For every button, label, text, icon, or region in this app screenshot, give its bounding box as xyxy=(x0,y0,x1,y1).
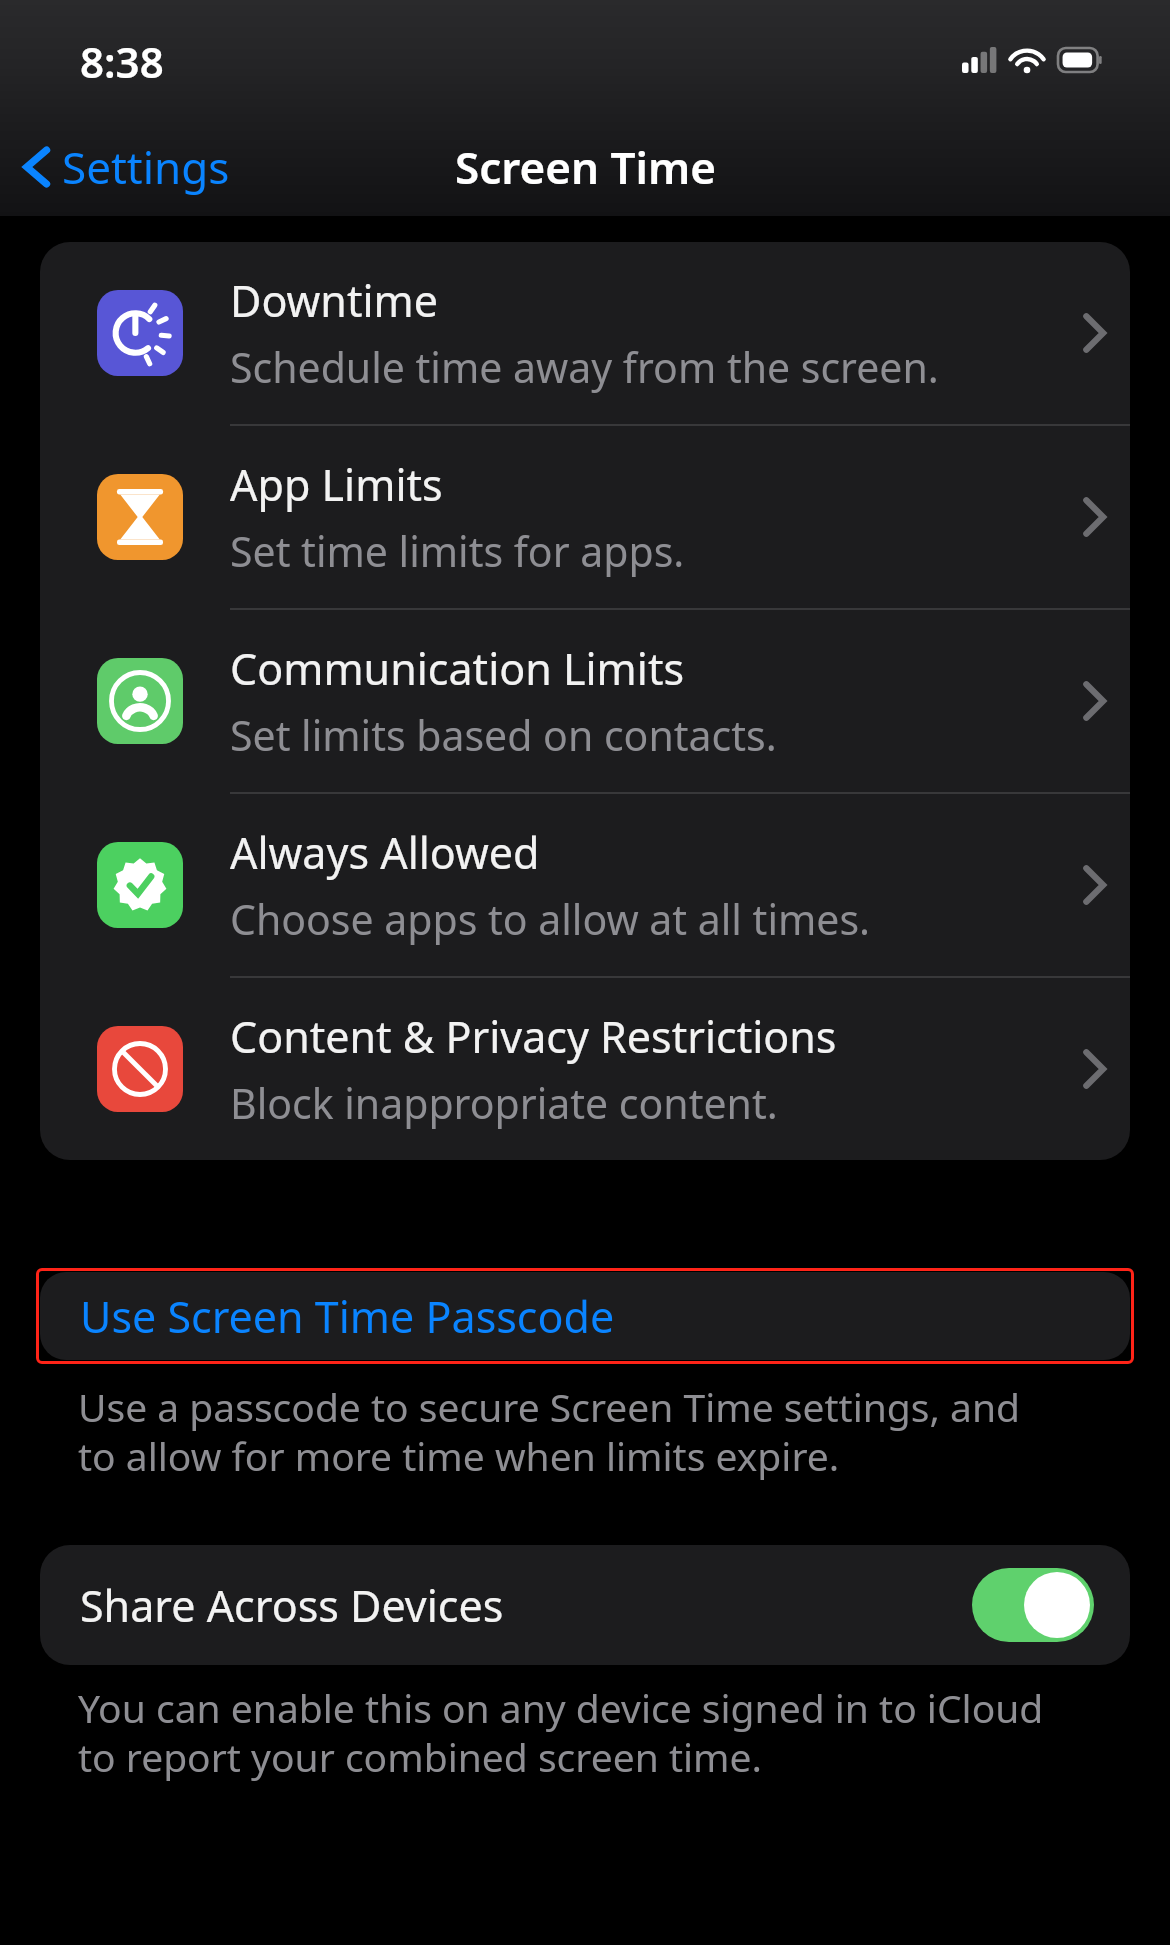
staticText: Always Allowed xyxy=(230,823,540,882)
staticText: Set time limits for apps. xyxy=(230,523,685,579)
staticText: App Limits xyxy=(230,455,443,514)
other: Share Across Devices toggle, on xyxy=(972,1568,1094,1642)
button[interactable]: Use Screen Time Passcode xyxy=(40,1272,1130,1360)
staticText: Block inappropriate content. xyxy=(230,1075,778,1131)
staticText: Set limits based on contacts. xyxy=(230,707,777,763)
button[interactable]: Always Allowed xyxy=(40,794,1130,976)
staticText: Screen Time xyxy=(455,137,716,197)
button[interactable]: Communication Limits xyxy=(40,610,1130,792)
staticText: Use Screen Time Passcode xyxy=(80,1287,615,1346)
button[interactable]: Settings xyxy=(0,129,248,205)
button[interactable]: App Limits xyxy=(40,426,1130,608)
button[interactable]: Share Across Devices xyxy=(40,1545,1130,1665)
button[interactable]: Downtime xyxy=(40,242,1130,424)
staticText: You can enable this on any device signed… xyxy=(78,1681,1110,1784)
staticText: 8:38 xyxy=(80,33,164,90)
staticText: Schedule time away from the screen. xyxy=(230,339,939,395)
staticText: Use a passcode to secure Screen Time set… xyxy=(78,1380,1110,1483)
staticText: Choose apps to allow at all times. xyxy=(230,891,871,947)
staticText: Communication Limits xyxy=(230,639,685,698)
staticText: Settings xyxy=(62,137,230,197)
staticText: Content & Privacy Restrictions xyxy=(230,1007,837,1066)
button[interactable]: Content & Privacy Restrictions xyxy=(40,978,1130,1160)
staticText: Share Across Devices xyxy=(80,1576,972,1635)
staticText: Downtime xyxy=(230,271,438,330)
